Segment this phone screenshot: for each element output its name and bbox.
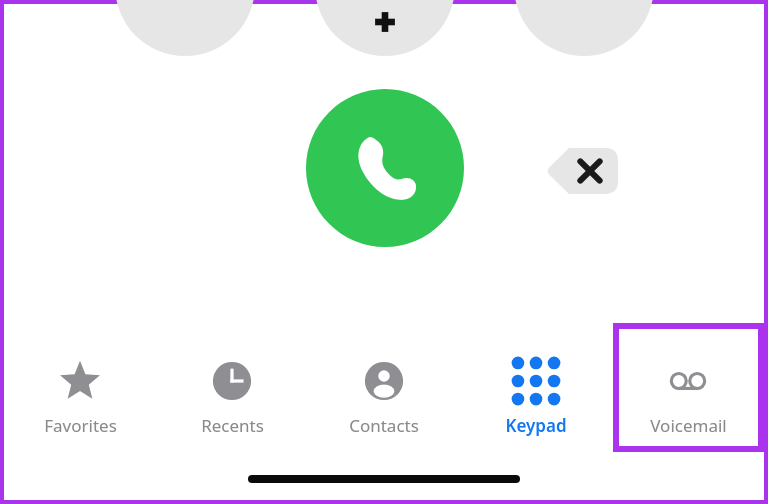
button[interactable]: Voicemail [612,322,764,438]
button[interactable]: Delete [548,148,618,194]
button[interactable] [514,0,654,56]
button[interactable]: Call [306,89,464,247]
button[interactable] [115,0,255,56]
button[interactable]: Favorites [4,322,156,438]
button[interactable] [315,0,455,56]
staticText: Voicemail [650,414,727,437]
staticText: Contacts [349,414,419,437]
button[interactable]: Keypad [460,322,612,438]
button[interactable]: Recents [156,322,308,438]
button[interactable]: Contacts [308,322,460,438]
staticText: Favorites [44,414,117,437]
staticText: Keypad [505,414,567,437]
staticText: Recents [201,414,264,437]
